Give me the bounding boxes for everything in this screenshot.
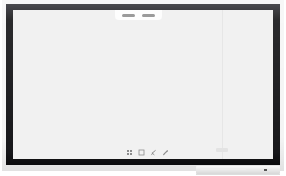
button[interactable]	[122, 14, 135, 17]
other: Pen tray	[196, 166, 280, 174]
button[interactable]: Pen tool	[162, 149, 169, 156]
button[interactable]	[142, 14, 155, 17]
button[interactable]: Select tool	[150, 149, 157, 156]
button[interactable]: Grid view	[126, 149, 133, 156]
button[interactable]: Shape tool	[138, 149, 145, 156]
